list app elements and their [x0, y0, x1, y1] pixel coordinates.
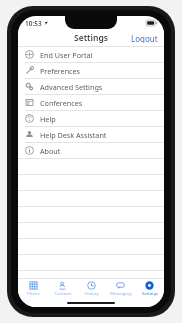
- staticText: Help: [40, 114, 56, 124]
- staticText: Preferences: [40, 66, 81, 76]
- staticText: Conferences: [40, 98, 83, 108]
- staticText: Advanced Settings: [40, 82, 103, 92]
- staticText: History: [84, 291, 99, 297]
- staticText: Help Desk Assistant: [40, 130, 107, 140]
- button[interactable]: End User Portal: [18, 47, 164, 62]
- button[interactable]: Messaging: [106, 279, 135, 299]
- button[interactable]: Logout: [125, 30, 164, 46]
- button[interactable]: Conferences: [18, 95, 164, 110]
- staticText: 10:53: [25, 19, 42, 28]
- staticText: Phone: [27, 291, 40, 297]
- staticText: End User Portal: [40, 50, 93, 60]
- staticText: Settings: [74, 32, 108, 44]
- button[interactable]: Advanced Settings: [18, 79, 164, 94]
- staticText: Messaging: [110, 291, 132, 297]
- button[interactable]: Help Desk Assistant: [18, 127, 164, 142]
- button[interactable]: Phone: [18, 279, 48, 299]
- button[interactable]: Preferences: [18, 63, 164, 78]
- staticText: Settings: [142, 291, 158, 297]
- staticText: Contacts: [54, 291, 72, 297]
- button[interactable]: About: [18, 143, 164, 158]
- button[interactable]: Help: [18, 111, 164, 126]
- button[interactable]: Contacts: [48, 279, 77, 299]
- staticText: Logout: [131, 33, 158, 43]
- button[interactable]: Settings: [135, 279, 164, 299]
- staticText: About: [40, 146, 61, 156]
- button[interactable]: History: [77, 279, 106, 299]
